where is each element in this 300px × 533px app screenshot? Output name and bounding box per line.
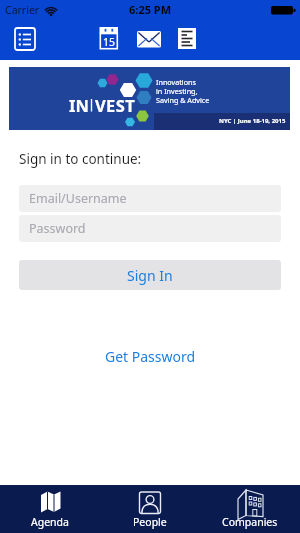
button[interactable]: Sign In — [19, 260, 281, 290]
button[interactable]: Email/Username — [19, 185, 281, 212]
staticText: Innovations in Investing, Saving & Advic… — [156, 77, 210, 105]
staticText: IN — [69, 94, 89, 116]
staticText: Agenda — [31, 515, 69, 529]
staticText: 6:25 PM — [129, 2, 172, 17]
button[interactable] — [95, 24, 123, 52]
button[interactable]: Agenda — [0, 485, 100, 533]
button[interactable]: Companies — [200, 485, 300, 533]
staticText: 15 — [103, 35, 116, 49]
button[interactable]: Password — [19, 215, 281, 242]
staticText: People — [133, 515, 167, 529]
button[interactable] — [10, 24, 40, 54]
staticText: VEST — [95, 94, 136, 116]
button[interactable] — [173, 24, 201, 52]
button[interactable]: People — [100, 485, 200, 533]
staticText: Sign in to continue: — [19, 150, 142, 168]
staticText: Sign In — [127, 266, 173, 285]
staticText: NYC | June 18-19, 2015 — [219, 117, 286, 125]
button[interactable] — [133, 24, 163, 52]
staticText: Companies — [222, 515, 278, 529]
button[interactable]: Get Password — [105, 347, 196, 366]
staticText: Carrier — [5, 3, 40, 17]
staticText: Get Password — [105, 347, 196, 366]
staticText: Password — [29, 220, 86, 237]
staticText: Email/Username — [29, 190, 127, 207]
